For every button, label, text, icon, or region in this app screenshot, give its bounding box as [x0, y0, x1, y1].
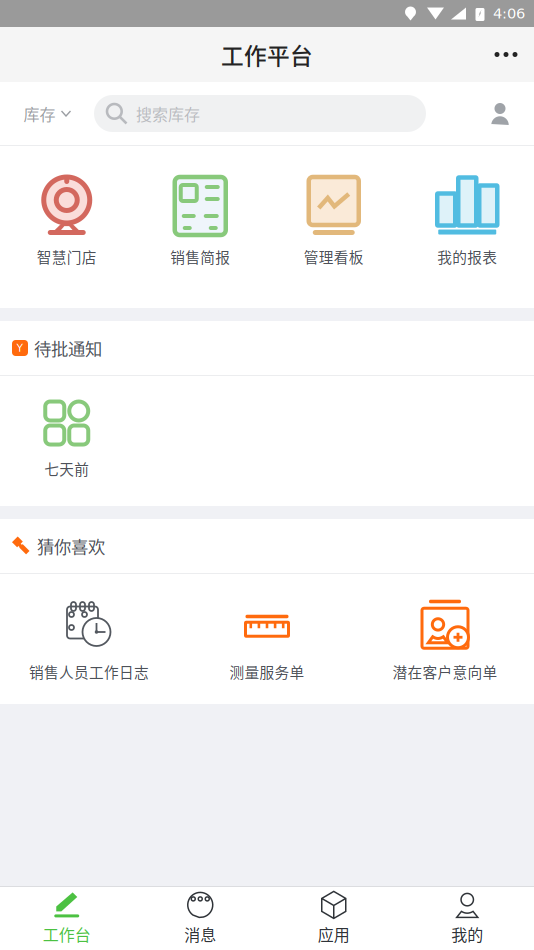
staticText: 潜在客户意向单: [392, 661, 497, 682]
staticText: 我的: [451, 922, 483, 946]
staticText: 应用: [318, 922, 350, 946]
button[interactable]: 七天前: [0, 376, 133, 506]
button[interactable]: More options: [478, 27, 534, 82]
button[interactable]: 库存: [0, 82, 94, 145]
button[interactable]: 测量服务单: [178, 574, 356, 704]
staticText: 我的报表: [437, 246, 497, 267]
staticText: 猜你喜欢: [37, 533, 105, 559]
staticText: Y: [16, 342, 23, 354]
button[interactable]: 我的: [400, 887, 534, 950]
staticText: 4:06: [493, 5, 525, 22]
staticText: 销售简报: [170, 246, 230, 267]
staticText: 测量服务单: [229, 661, 304, 682]
staticText: 待批通知: [34, 335, 102, 361]
staticText: 消息: [184, 922, 216, 946]
staticText: 智慧门店: [37, 246, 97, 267]
button[interactable]: Account: [466, 82, 534, 145]
button[interactable]: 应用: [267, 887, 400, 950]
button[interactable]: 搜索库存: [94, 95, 426, 132]
button[interactable]: 智慧门店: [0, 146, 133, 308]
button[interactable]: 管理看板: [267, 146, 400, 308]
staticText: 管理看板: [304, 246, 364, 267]
button[interactable]: 工作台: [0, 887, 133, 950]
staticText: 库存: [23, 102, 55, 125]
button[interactable]: 销售人员工作日志: [0, 574, 178, 704]
staticText: 销售人员工作日志: [29, 661, 149, 682]
staticText: 工作台: [43, 922, 91, 946]
staticText: 工作平台: [221, 38, 313, 71]
button[interactable]: 我的报表: [400, 146, 534, 308]
staticText: 搜索库存: [136, 102, 200, 125]
staticText: 七天前: [44, 458, 89, 479]
button[interactable]: 潜在客户意向单: [356, 574, 534, 704]
button[interactable]: 销售简报: [133, 146, 267, 308]
button[interactable]: 消息: [133, 887, 267, 950]
